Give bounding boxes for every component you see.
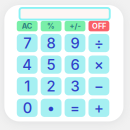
staticText: + <box>94 99 104 117</box>
staticText: = <box>70 99 80 117</box>
staticText: 0 <box>23 99 32 117</box>
staticText: 3 <box>70 77 79 95</box>
button[interactable]: 7 <box>17 34 38 52</box>
staticText: • <box>47 99 55 117</box>
staticText: ÷ <box>94 34 104 52</box>
button[interactable]: 5 <box>41 55 61 74</box>
button[interactable]: AC <box>17 21 38 31</box>
staticText: × <box>94 56 104 73</box>
staticText: 9 <box>70 34 79 52</box>
staticText: − <box>94 77 104 95</box>
button[interactable]: % <box>41 21 61 31</box>
button[interactable]: 6 <box>65 55 85 74</box>
staticText: 7 <box>23 34 31 52</box>
button[interactable]: 4 <box>17 55 38 74</box>
button[interactable]: × <box>88 55 109 74</box>
button[interactable]: 8 <box>41 34 61 52</box>
button[interactable]: OFF <box>88 21 109 31</box>
button[interactable]: +/- <box>65 21 85 31</box>
staticText: 2 <box>47 77 56 95</box>
staticText: 8 <box>47 34 56 52</box>
button[interactable]: • <box>41 99 61 117</box>
staticText: % <box>47 22 55 31</box>
button[interactable]: ÷ <box>88 34 109 52</box>
button[interactable]: = <box>65 99 85 117</box>
button[interactable]: 3 <box>65 77 85 95</box>
button[interactable]: 0 <box>17 99 38 117</box>
staticText: 1 <box>24 77 30 95</box>
staticText: 4 <box>22 56 32 73</box>
staticText: 6 <box>70 56 79 73</box>
button[interactable]: − <box>88 77 109 95</box>
staticText: OFF <box>92 22 106 31</box>
button[interactable]: + <box>88 99 109 117</box>
staticText: AC <box>22 22 33 31</box>
button[interactable]: 9 <box>65 34 85 52</box>
staticText: 5 <box>47 56 56 73</box>
button[interactable]: 1 <box>17 77 38 95</box>
button[interactable]: 2 <box>41 77 61 95</box>
staticText: +/- <box>69 22 80 31</box>
